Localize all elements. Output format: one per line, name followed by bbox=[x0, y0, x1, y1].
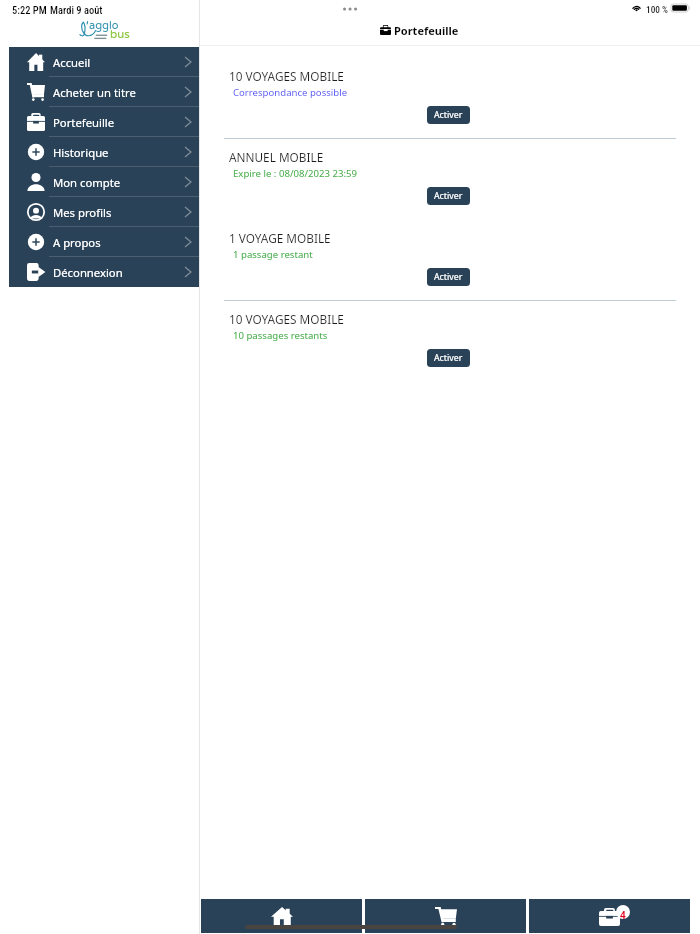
button[interactable]: A propos bbox=[9, 227, 199, 257]
staticText: 1 VOYAGE MOBILE bbox=[229, 230, 331, 246]
staticText: Portefeuille bbox=[53, 115, 115, 130]
button[interactable]: Accueil bbox=[201, 899, 362, 933]
staticText: 1 passage restant bbox=[233, 248, 313, 261]
button[interactable]: Accueil bbox=[9, 47, 199, 77]
staticText: Mon compte bbox=[53, 175, 121, 190]
staticText: 5:22 PM bbox=[12, 4, 47, 16]
staticText: Accueil bbox=[53, 55, 91, 70]
button[interactable]: Mes profils bbox=[9, 197, 199, 227]
staticText: Mes profils bbox=[53, 205, 112, 220]
button[interactable]: Portefeuille bbox=[529, 899, 690, 933]
button[interactable]: 10 VOYAGES MOBILE bbox=[200, 65, 700, 146]
button[interactable]: Activer bbox=[427, 187, 470, 205]
staticText: 10 VOYAGES MOBILE bbox=[229, 311, 344, 327]
button[interactable]: Portefeuille bbox=[9, 107, 199, 137]
button[interactable]: Déconnexion bbox=[9, 257, 199, 287]
button[interactable]: ANNUEL MOBILE bbox=[200, 146, 700, 227]
staticText: 10 passages restants bbox=[233, 329, 328, 342]
staticText: Activer bbox=[434, 352, 463, 364]
staticText: 4 bbox=[620, 908, 626, 922]
button[interactable]: Acheter un titre bbox=[9, 77, 199, 107]
button[interactable]: Acheter un titre bbox=[365, 899, 526, 933]
button[interactable]: Activer bbox=[427, 106, 470, 124]
staticText: 10 VOYAGES MOBILE bbox=[229, 68, 344, 84]
staticText: 100 % bbox=[646, 4, 668, 15]
staticText: Activer bbox=[434, 271, 463, 283]
staticText: ANNUEL MOBILE bbox=[229, 149, 324, 165]
staticText: Mardi 9 août bbox=[50, 4, 103, 16]
staticText: Activer bbox=[434, 190, 463, 202]
button[interactable]: Historique bbox=[9, 137, 199, 167]
staticText: Portefeuille bbox=[394, 23, 459, 38]
button[interactable]: 10 VOYAGES MOBILE bbox=[200, 308, 700, 389]
button[interactable]: Mon compte bbox=[9, 167, 199, 197]
button[interactable]: 1 VOYAGE MOBILE bbox=[200, 227, 700, 308]
staticText: Déconnexion bbox=[53, 265, 123, 280]
staticText: Acheter un titre bbox=[53, 85, 136, 100]
button[interactable]: Activer bbox=[427, 349, 470, 367]
staticText: agglo bbox=[89, 19, 119, 32]
staticText: Historique bbox=[53, 145, 109, 160]
staticText: Expire le : 08/08/2023 23:59 bbox=[233, 167, 357, 180]
staticText: bus bbox=[110, 27, 130, 41]
button[interactable]: Activer bbox=[427, 268, 470, 286]
staticText: A propos bbox=[53, 235, 101, 250]
staticText: Activer bbox=[434, 109, 463, 121]
staticText: Correspondance possible bbox=[233, 86, 348, 99]
